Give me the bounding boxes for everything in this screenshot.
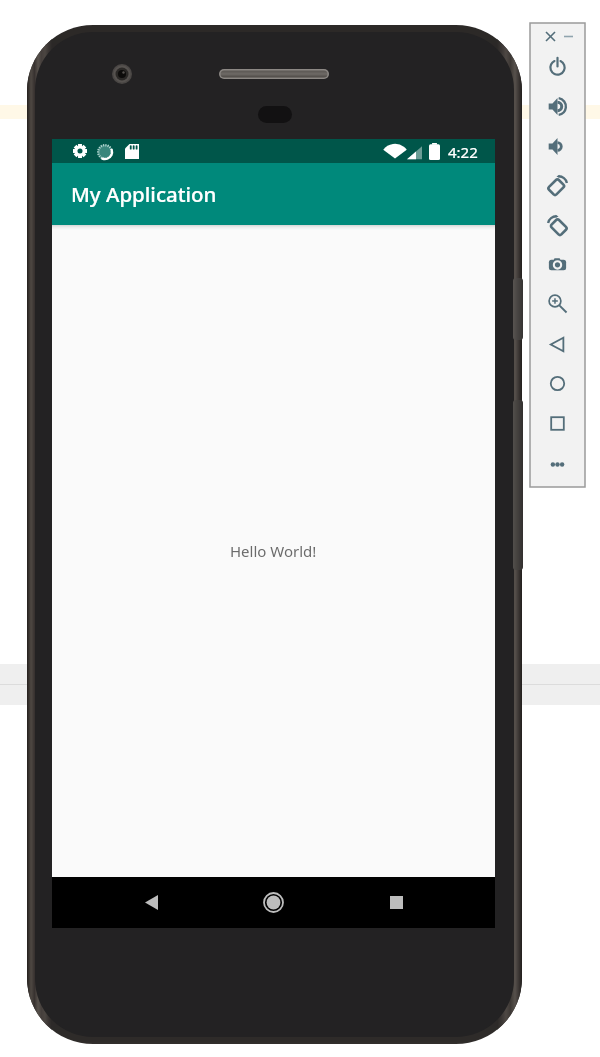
button[interactable]: Home: [545, 371, 570, 396]
button[interactable]: Zoom: [545, 291, 570, 316]
button[interactable]: Close: [542, 28, 558, 44]
button[interactable]: Volume up: [545, 94, 570, 119]
button[interactable]: Rotate right: [545, 213, 570, 238]
button[interactable]: Volume down: [545, 134, 570, 159]
button[interactable]: Minimize: [560, 28, 576, 44]
button[interactable]: Overview: [545, 411, 570, 436]
staticText: Hello World!: [230, 541, 317, 561]
button[interactable]: Recent apps: [372, 878, 421, 927]
button[interactable]: Power: [545, 54, 570, 79]
button[interactable]: Screenshot: [545, 252, 570, 277]
button[interactable]: Back: [127, 878, 176, 927]
button[interactable]: Home: [249, 878, 298, 927]
button[interactable]: More: [545, 452, 570, 477]
button[interactable]: Back: [545, 332, 570, 357]
staticText: My Application: [71, 180, 217, 208]
button[interactable]: Rotate left: [545, 173, 570, 198]
staticText: 4:22: [448, 142, 478, 162]
